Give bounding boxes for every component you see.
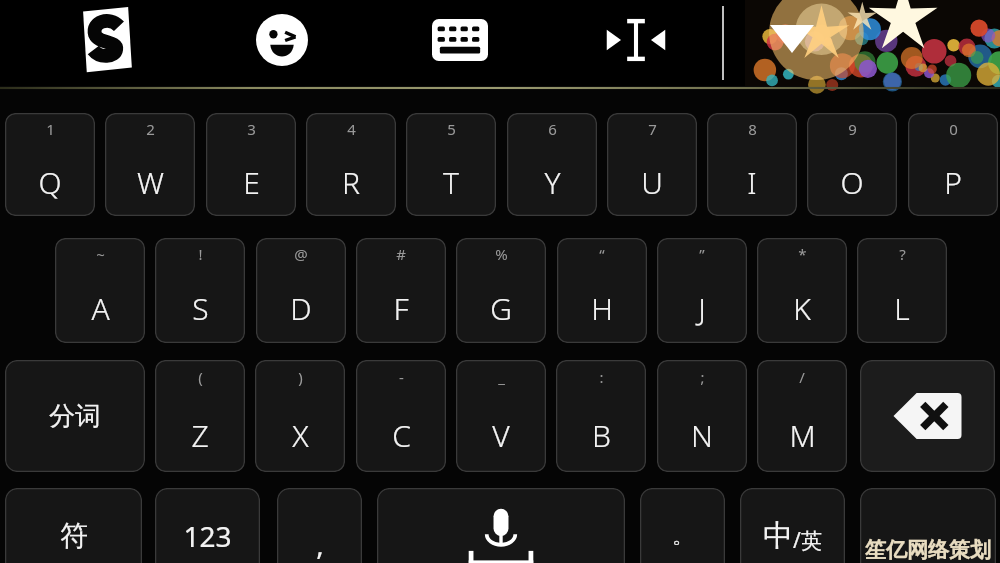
staticText: 4 bbox=[347, 119, 356, 139]
staticText: X bbox=[292, 415, 309, 456]
button[interactable]: Keyboard layout bbox=[418, 5, 502, 75]
staticText: M bbox=[789, 415, 816, 456]
button[interactable]: 4 bbox=[306, 113, 396, 216]
staticText: ; bbox=[700, 367, 705, 387]
staticText: ! bbox=[198, 244, 203, 264]
button[interactable]: @ bbox=[256, 238, 346, 343]
staticText: C bbox=[392, 415, 411, 456]
staticText: S bbox=[192, 288, 209, 329]
staticText: @ bbox=[294, 244, 308, 264]
button[interactable]: ( bbox=[155, 360, 245, 472]
staticText: 9 bbox=[848, 119, 857, 139]
staticText: “ bbox=[599, 244, 605, 264]
button[interactable]: * bbox=[757, 238, 847, 343]
staticText: P bbox=[944, 162, 962, 203]
staticText: ? bbox=[899, 244, 906, 264]
staticText: F bbox=[393, 288, 409, 329]
staticText: # bbox=[396, 244, 406, 264]
staticText: 3 bbox=[247, 119, 256, 139]
button[interactable]: Hide keyboard bbox=[762, 12, 822, 60]
staticText: L bbox=[894, 288, 910, 329]
staticText: U bbox=[641, 162, 663, 203]
staticText: 5 bbox=[447, 119, 456, 139]
staticText: 6 bbox=[548, 119, 557, 139]
button[interactable]: 0 bbox=[908, 113, 998, 216]
staticText: B bbox=[592, 415, 611, 456]
staticText: E bbox=[243, 162, 260, 203]
button[interactable]: ? bbox=[857, 238, 947, 343]
staticText: ” bbox=[699, 244, 705, 264]
staticText: 。 bbox=[672, 522, 694, 550]
button[interactable]: Sogou input method bbox=[62, 5, 152, 75]
staticText: 8 bbox=[748, 119, 757, 139]
button[interactable]: 9 bbox=[807, 113, 897, 216]
staticText: 笙亿网络策划 bbox=[865, 537, 991, 563]
button[interactable]: - bbox=[356, 360, 446, 472]
staticText: H bbox=[591, 288, 613, 329]
staticText: K bbox=[793, 288, 811, 329]
staticText: D bbox=[290, 288, 312, 329]
staticText: / bbox=[799, 367, 805, 387]
button[interactable]: ; bbox=[657, 360, 747, 472]
staticText: - bbox=[399, 367, 404, 387]
button[interactable]: ” bbox=[657, 238, 747, 343]
staticText: I bbox=[747, 162, 757, 203]
staticText: ~ bbox=[96, 244, 105, 264]
staticText: N bbox=[691, 415, 713, 456]
staticText: ) bbox=[298, 367, 303, 387]
button[interactable]: ~ bbox=[55, 238, 145, 343]
staticText: 0 bbox=[949, 119, 958, 139]
staticText: 分词 bbox=[49, 400, 101, 433]
button[interactable]: 123 bbox=[155, 488, 260, 563]
staticText: ( bbox=[198, 367, 203, 387]
button[interactable]: _ bbox=[456, 360, 546, 472]
button[interactable]: 3 bbox=[206, 113, 296, 216]
button[interactable]: : bbox=[556, 360, 646, 472]
staticText: O bbox=[840, 162, 864, 203]
staticText: 7 bbox=[648, 119, 657, 139]
staticText: 中 bbox=[763, 517, 793, 555]
staticText: , bbox=[316, 525, 324, 563]
button[interactable]: Move cursor bbox=[594, 5, 678, 75]
staticText: V bbox=[492, 415, 510, 456]
button[interactable]: Enter bbox=[860, 488, 996, 563]
staticText: Q bbox=[38, 162, 62, 203]
staticText: R bbox=[342, 162, 360, 203]
button[interactable]: 5 bbox=[406, 113, 496, 216]
button[interactable]: 8 bbox=[707, 113, 797, 216]
button[interactable]: “ bbox=[557, 238, 647, 343]
button[interactable]: 中 bbox=[740, 488, 845, 563]
staticText: J bbox=[698, 288, 706, 329]
button[interactable]: 6 bbox=[507, 113, 597, 216]
staticText: : bbox=[599, 367, 604, 387]
button[interactable]: % bbox=[456, 238, 546, 343]
button[interactable]: 分词 bbox=[5, 360, 145, 472]
staticText: 1 bbox=[46, 119, 55, 139]
staticText: * bbox=[798, 244, 807, 264]
button[interactable]: Space / voice input bbox=[377, 488, 625, 563]
staticText: A bbox=[91, 288, 110, 329]
staticText: _ bbox=[498, 367, 505, 387]
button[interactable]: 7 bbox=[607, 113, 697, 216]
staticText: Z bbox=[191, 415, 209, 456]
button[interactable]: ) bbox=[255, 360, 345, 472]
button[interactable]: 。 bbox=[640, 488, 725, 563]
button[interactable]: # bbox=[356, 238, 446, 343]
button[interactable]: Backspace bbox=[860, 360, 995, 472]
staticText: 2 bbox=[146, 119, 155, 139]
staticText: G bbox=[490, 288, 512, 329]
button[interactable]: Emoji bbox=[240, 5, 324, 75]
button[interactable]: 符 bbox=[5, 488, 142, 563]
staticText: 123 bbox=[183, 517, 232, 555]
button[interactable]: / bbox=[757, 360, 847, 472]
button[interactable]: 2 bbox=[105, 113, 195, 216]
button[interactable]: ! bbox=[155, 238, 245, 343]
staticText: 符 bbox=[60, 518, 88, 553]
staticText: Y bbox=[544, 162, 561, 203]
staticText: /英 bbox=[793, 526, 822, 555]
staticText: W bbox=[137, 162, 164, 203]
staticText: % bbox=[495, 244, 508, 264]
button[interactable]: 1 bbox=[5, 113, 95, 216]
staticText: T bbox=[443, 162, 459, 203]
button[interactable]: , bbox=[277, 488, 362, 563]
